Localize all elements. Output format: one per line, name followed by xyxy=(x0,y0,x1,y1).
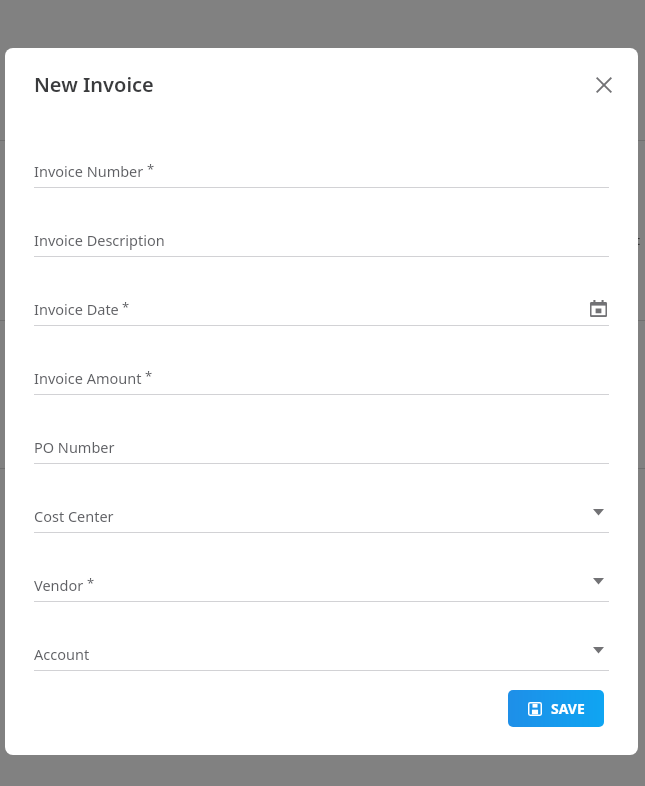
staticText: * xyxy=(145,367,153,385)
staticText: New Invoice xyxy=(34,71,154,98)
button[interactable]: Invoice Amount xyxy=(34,326,609,395)
staticText: Invoice Number xyxy=(34,161,144,181)
staticText: * xyxy=(87,574,95,592)
staticText: nte xyxy=(628,232,645,248)
button[interactable]: Invoice Date xyxy=(34,257,609,326)
staticText: Account xyxy=(34,644,90,664)
staticText: SAVE xyxy=(551,699,585,718)
staticText: * xyxy=(122,298,130,316)
staticText: Vendor xyxy=(34,575,84,595)
button[interactable]: Vendor xyxy=(34,533,609,602)
button[interactable]: Open dropdown xyxy=(587,642,609,662)
staticText: Invoice Date xyxy=(34,299,119,319)
button[interactable]: SAVE xyxy=(508,690,604,727)
button[interactable]: Open dropdown xyxy=(587,504,609,524)
button[interactable]: Invoice Description xyxy=(34,188,609,257)
staticText: Invoice Amount xyxy=(34,368,142,388)
button[interactable]: Close xyxy=(583,64,625,106)
staticText: PO Number xyxy=(34,437,115,457)
button[interactable]: Pick date xyxy=(587,297,609,319)
button[interactable]: Open dropdown xyxy=(587,573,609,593)
staticText: Cost Center xyxy=(34,506,114,526)
button[interactable]: Invoice Number xyxy=(34,119,609,188)
staticText: Invoice Description xyxy=(34,230,165,250)
button[interactable]: PO Number xyxy=(34,395,609,464)
button[interactable]: Account xyxy=(34,602,609,671)
staticText: * xyxy=(147,160,155,178)
button[interactable]: Cost Center xyxy=(34,464,609,533)
